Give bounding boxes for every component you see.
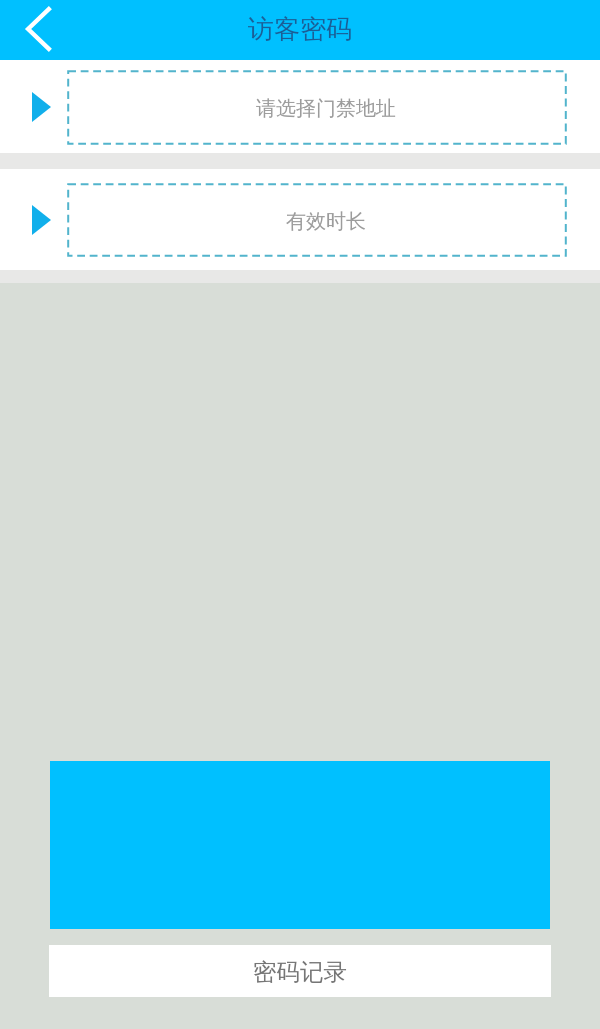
button[interactable]: Back xyxy=(0,0,62,60)
button[interactable]: 请选择门禁地址 xyxy=(0,60,600,153)
staticText: 访客密码 xyxy=(248,13,352,46)
staticText: 请选择门禁地址 xyxy=(256,96,396,121)
staticText: 有效时长 xyxy=(286,209,366,234)
button[interactable]: 密码记录 xyxy=(49,945,551,997)
button[interactable]: 有效时长 xyxy=(0,169,600,270)
staticText: 密码记录 xyxy=(253,957,347,987)
